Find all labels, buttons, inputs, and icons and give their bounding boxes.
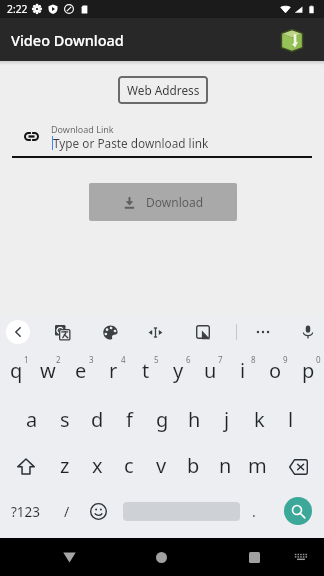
button[interactable]: x <box>81 444 113 489</box>
button[interactable]: 4 <box>97 352 129 397</box>
staticText: Type or Paste download link <box>53 135 209 151</box>
button[interactable]: 0 <box>292 352 324 397</box>
staticText: r <box>109 357 118 384</box>
button[interactable]: 5 <box>130 352 162 397</box>
staticText: ?123 <box>11 503 41 521</box>
staticText: s <box>60 406 70 433</box>
button[interactable]: Backspace <box>275 444 321 489</box>
staticText: q <box>10 357 23 384</box>
staticText: g <box>156 406 169 433</box>
staticText: 2 <box>56 354 61 365</box>
staticText: k <box>254 406 265 433</box>
button[interactable]: Download box <box>281 29 303 52</box>
staticText: Web Address <box>127 82 200 98</box>
staticText: h <box>188 406 201 433</box>
staticText: i <box>240 357 246 384</box>
staticText: x <box>92 452 103 479</box>
button[interactable]: Recent apps <box>231 538 278 576</box>
staticText: w <box>40 357 56 384</box>
button[interactable]: Text editing <box>141 318 169 346</box>
button[interactable]: Back <box>46 538 93 576</box>
staticText: d <box>91 406 104 433</box>
button[interactable]: j <box>211 398 243 443</box>
staticText: p <box>302 357 315 384</box>
staticText: c <box>124 452 134 479</box>
button[interactable]: d <box>81 398 113 443</box>
staticText: 5 <box>154 354 159 365</box>
button[interactable]: b <box>177 444 209 489</box>
button[interactable]: Stickers <box>189 318 217 346</box>
button[interactable]: 9 <box>259 352 291 397</box>
staticText: u <box>204 357 217 384</box>
button[interactable]: Themes <box>96 318 124 346</box>
staticText: m <box>248 452 267 479</box>
staticText: 2:22 <box>7 2 28 16</box>
staticText: . <box>252 502 256 521</box>
button[interactable]: Space <box>111 489 247 534</box>
staticText: l <box>288 406 294 433</box>
button[interactable]: h <box>178 398 210 443</box>
button[interactable]: 7 <box>194 352 226 397</box>
button[interactable]: Back <box>6 320 30 344</box>
staticText: j <box>224 406 230 433</box>
button[interactable]: n <box>209 444 241 489</box>
button[interactable]: More options <box>249 318 277 346</box>
staticText: v <box>156 452 167 479</box>
button[interactable]: Voice input <box>294 318 322 346</box>
staticText: a <box>26 406 38 433</box>
button[interactable]: Shift <box>3 444 49 489</box>
button[interactable]: ?123 <box>3 489 49 534</box>
button[interactable]: / <box>51 489 83 534</box>
staticText: 4 <box>121 354 126 365</box>
button[interactable]: Search <box>284 497 312 525</box>
button[interactable]: g <box>146 398 178 443</box>
button[interactable]: m <box>241 444 273 489</box>
staticText: 3 <box>89 354 94 365</box>
button[interactable]: 1 <box>0 352 32 397</box>
button[interactable]: z <box>49 444 81 489</box>
staticText: 1 <box>24 354 29 365</box>
button[interactable]: c <box>113 444 145 489</box>
button[interactable]: Translate <box>48 318 76 346</box>
button[interactable]: 3 <box>65 352 97 397</box>
button[interactable]: Home <box>138 538 185 576</box>
staticText: b <box>187 452 200 479</box>
button[interactable]: a <box>16 398 48 443</box>
button[interactable]: k <box>243 398 275 443</box>
button[interactable]: f <box>113 398 145 443</box>
staticText: y <box>173 357 184 384</box>
button[interactable]: s <box>49 398 81 443</box>
button[interactable]: . <box>240 489 268 534</box>
button[interactable]: 2 <box>32 352 64 397</box>
staticText: z <box>60 452 70 479</box>
button[interactable]: Web Address <box>118 76 208 104</box>
staticText: Download Link <box>51 123 114 135</box>
staticText: / <box>64 502 70 521</box>
staticText: 8 <box>251 354 256 365</box>
staticText: t <box>142 357 150 384</box>
button[interactable]: v <box>145 444 177 489</box>
staticText: n <box>219 452 232 479</box>
button[interactable]: 6 <box>162 352 194 397</box>
staticText: f <box>126 406 133 433</box>
button[interactable]: Emoji <box>84 489 112 534</box>
staticText: e <box>75 357 87 384</box>
staticText: 0 <box>316 354 321 365</box>
staticText: 7 <box>218 354 223 365</box>
staticText: Download <box>146 194 204 210</box>
button[interactable]: 8 <box>227 352 259 397</box>
staticText: o <box>269 357 282 384</box>
staticText: Video Download <box>11 30 124 50</box>
button[interactable]: Download <box>89 183 237 221</box>
staticText: 9 <box>283 354 288 365</box>
button[interactable]: l <box>275 398 307 443</box>
staticText: 6 <box>186 354 191 365</box>
button[interactable]: Switch keyboard <box>287 538 315 576</box>
